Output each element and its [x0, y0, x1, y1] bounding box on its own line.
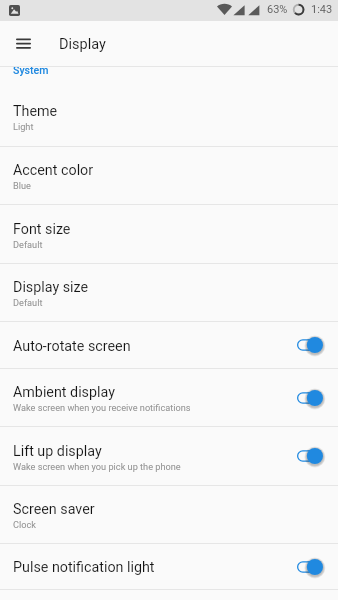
staticText: Lift up display [13, 443, 102, 460]
staticText: Display size [13, 279, 89, 296]
button[interactable]: Auto-rotate screen [0, 322, 338, 368]
button[interactable]: Ambient display [0, 369, 338, 426]
staticText: Wake screen when you receive notificatio… [13, 402, 191, 413]
staticText: Auto-rotate screen [13, 338, 131, 355]
button[interactable]: Screen saver [0, 486, 338, 543]
staticText: 1:43 [311, 3, 333, 16]
staticText: Clock [13, 519, 36, 530]
button[interactable]: Font size [0, 205, 338, 263]
button[interactable]: Accent color [0, 147, 338, 204]
button[interactable]: Pulse notification light [0, 544, 338, 589]
staticText: Display [59, 36, 106, 53]
button[interactable]: Lift up display [0, 427, 338, 485]
button[interactable]: Toggle Lift up display [292, 427, 338, 485]
staticText: Wake screen when you pick up the phone [13, 461, 181, 472]
button[interactable]: Toggle Pulse notification light [292, 544, 338, 589]
staticText: Accent color [13, 162, 94, 179]
staticText: Pulse notification light [13, 559, 155, 576]
button[interactable]: Toggle Auto-rotate screen [292, 322, 338, 368]
staticText: Font size [13, 221, 71, 238]
staticText: Blue [13, 180, 31, 191]
staticText: Light [13, 121, 34, 132]
staticText: Theme [13, 103, 58, 120]
staticText: System [13, 64, 49, 76]
button[interactable]: Open navigation menu [0, 21, 46, 66]
staticText: Default [13, 239, 43, 250]
button[interactable]: Display size [0, 264, 338, 321]
staticText: 63% [267, 3, 288, 16]
staticText: Screen saver [13, 501, 95, 518]
button[interactable]: Toggle Ambient display [292, 369, 338, 426]
button[interactable]: Theme [0, 87, 338, 146]
staticText: Default [13, 297, 43, 308]
staticText: Ambient display [13, 384, 115, 401]
